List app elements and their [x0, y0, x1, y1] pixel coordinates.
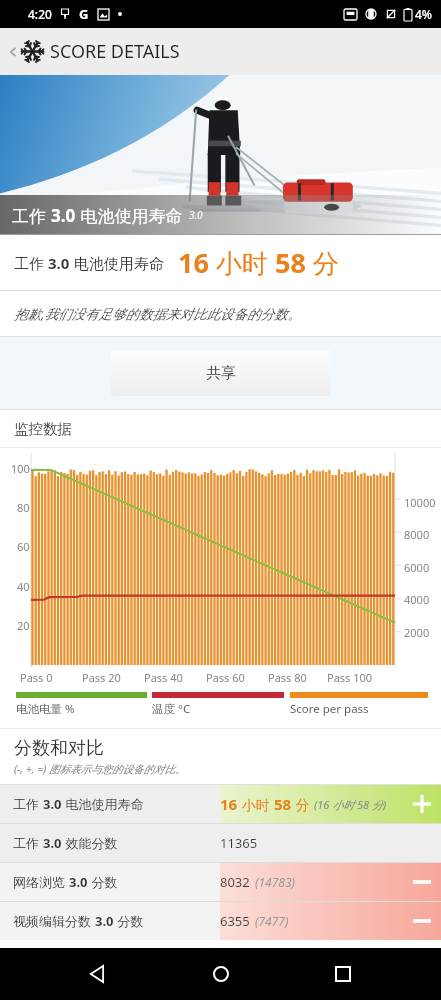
staticText: 分数和对比	[14, 737, 104, 760]
staticText: Pass 40	[144, 670, 183, 685]
staticText: 分	[306, 245, 339, 281]
other: Worse	[413, 918, 431, 924]
button[interactable]: 视频编辑分数	[0, 902, 441, 940]
staticText: Pass 0	[20, 670, 53, 685]
button[interactable]: Recent apps	[319, 950, 367, 998]
staticText: 16	[178, 244, 209, 281]
staticText: 共享	[206, 364, 236, 383]
staticText: SCORE DETAILS	[50, 39, 180, 64]
staticText: 小时	[209, 245, 275, 281]
staticText: 10000	[404, 495, 436, 510]
staticText: 80	[17, 500, 30, 515]
staticText: 40	[17, 579, 30, 594]
staticText: 工作	[13, 834, 43, 852]
staticText: 电池使用寿命	[62, 795, 144, 813]
staticText: Pass 20	[82, 670, 121, 685]
staticText: 100	[11, 461, 30, 476]
staticText: Pass 60	[206, 670, 245, 685]
staticText: 小时	[238, 795, 274, 814]
staticText: 8000	[404, 527, 430, 542]
staticText: 3.0	[43, 834, 62, 852]
other: Better	[413, 795, 431, 813]
staticText: 6000	[404, 560, 430, 575]
button[interactable]: 网络浏览	[0, 863, 441, 901]
staticText: 4000	[404, 592, 430, 607]
staticText: 3.0	[51, 204, 76, 227]
button[interactable]: 共享	[111, 350, 331, 396]
staticText: 2000	[404, 625, 430, 640]
staticText: 分数	[114, 912, 144, 930]
staticText: 3.0	[48, 253, 70, 273]
staticText: 分数	[88, 873, 118, 891]
staticText: 分	[292, 795, 310, 814]
staticText: 4%	[415, 6, 433, 22]
staticText: 4:20	[28, 6, 52, 22]
staticText: (16 小时 58 分)	[314, 797, 387, 812]
staticText: 效能分数	[62, 834, 118, 852]
staticText: 58	[275, 244, 306, 281]
staticText: G	[79, 5, 89, 23]
other: Worse	[413, 879, 431, 885]
staticText: 工作	[14, 253, 48, 273]
staticText: 3.0	[43, 795, 62, 813]
button[interactable]: Back	[74, 950, 122, 998]
button[interactable]: 工作	[0, 785, 441, 823]
button[interactable]: 工作	[0, 824, 441, 862]
staticText: 3.0	[69, 873, 88, 891]
staticText: Score per pass	[290, 701, 369, 717]
staticText: 58	[274, 794, 292, 814]
staticText: 16	[220, 794, 238, 814]
staticText: 20	[17, 618, 30, 633]
staticText: 监控数据	[14, 420, 72, 438]
staticText: 工作	[12, 204, 51, 227]
staticText: 抱歉,我们没有足够的数据来对比此设备的分数。	[14, 305, 301, 323]
staticText: (14783)	[255, 874, 296, 890]
staticText: 电池使用寿命	[70, 253, 164, 273]
staticText: 工作	[13, 795, 43, 813]
staticText: 11365	[220, 834, 258, 852]
staticText: 网络浏览	[13, 873, 69, 891]
staticText: 视频编辑分数	[13, 912, 95, 930]
staticText: 6355	[220, 912, 250, 930]
button[interactable]: Home	[197, 950, 245, 998]
staticText: Pass 80	[268, 670, 307, 685]
staticText: 3.0	[95, 912, 114, 930]
staticText: (7477)	[255, 913, 289, 929]
staticText: 60	[17, 539, 30, 554]
staticText: 电池电量 %	[16, 701, 75, 717]
staticText: 电池使用寿命	[76, 204, 183, 227]
staticText: 3.0	[189, 208, 203, 222]
staticText: 8032	[220, 873, 250, 891]
staticText: Pass 100	[327, 670, 373, 685]
button[interactable]: Back	[0, 28, 441, 75]
staticText: (-, +, =) 图标表示与您的设备的对比。	[14, 762, 186, 776]
other: Back	[6, 45, 20, 59]
staticText: 温度 °C	[152, 701, 191, 717]
